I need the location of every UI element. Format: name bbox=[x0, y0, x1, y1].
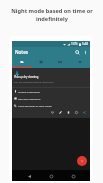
button[interactable]: Write primarily in dark mode bbox=[12, 102, 90, 109]
button[interactable]: Back bbox=[24, 171, 34, 181]
button[interactable]: Pinned notification bbox=[12, 88, 90, 95]
staticText: 100% bbox=[71, 42, 78, 46]
staticText: Write primarily in dark mode bbox=[18, 104, 52, 107]
button[interactable]: Search bbox=[73, 48, 82, 57]
button[interactable]: Checklists tab bbox=[31, 57, 50, 67]
button[interactable]: Photos tab bbox=[50, 57, 70, 67]
button[interactable]: Recents bbox=[68, 171, 78, 181]
staticText: Will be available before afternoon bbox=[14, 80, 54, 83]
staticText: Night mode based on time or indefinitely bbox=[11, 7, 93, 23]
button[interactable]: Copy bbox=[64, 109, 72, 116]
button[interactable]: Add note bbox=[77, 156, 87, 166]
button[interactable]: Text with signature bbox=[12, 95, 90, 102]
button[interactable]: Edit bbox=[56, 109, 64, 116]
button[interactable]: Notes tab bbox=[12, 57, 31, 67]
staticText: 5:48 bbox=[82, 42, 88, 46]
staticText: Pinned notification bbox=[18, 90, 41, 93]
staticText: Text with signature bbox=[18, 97, 41, 100]
button[interactable]: Home bbox=[46, 171, 56, 181]
button[interactable]: Share bbox=[80, 109, 88, 116]
button[interactable]: More options bbox=[82, 49, 89, 56]
staticText: Pick up dry cleaning bbox=[14, 75, 39, 79]
button[interactable]: Archive bbox=[72, 109, 80, 116]
button[interactable]: Favourites tab bbox=[70, 57, 90, 67]
staticText: Notes bbox=[15, 49, 29, 55]
button[interactable]: Favourite bbox=[48, 109, 56, 116]
